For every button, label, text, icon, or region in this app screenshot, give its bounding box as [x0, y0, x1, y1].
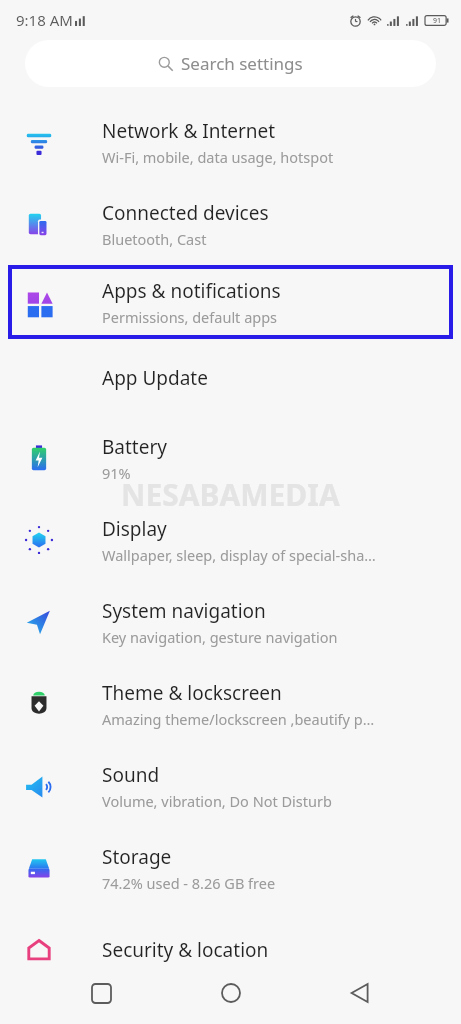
staticText: Key navigation, gesture navigation: [102, 627, 338, 647]
button[interactable]: App Update: [0, 339, 461, 417]
staticText: Storage: [102, 844, 172, 870]
button[interactable]: Security & location: [0, 909, 461, 991]
button[interactable]: System navigation: [0, 581, 461, 663]
staticText: Security & location: [102, 937, 269, 963]
staticText: Volume, vibration, Do Not Disturb: [102, 791, 332, 811]
button[interactable]: Network & Internet: [0, 101, 461, 183]
staticText: 91%: [102, 463, 131, 483]
button[interactable]: Storage: [0, 827, 461, 909]
staticText: Theme & lockscreen: [102, 680, 282, 706]
staticText: Sound: [102, 762, 160, 788]
staticText: Apps & notifications: [102, 278, 281, 304]
staticText: Search settings: [181, 52, 303, 75]
button[interactable]: Home: [202, 964, 260, 1022]
staticText: System navigation: [102, 598, 266, 624]
staticText: Battery: [102, 434, 167, 460]
staticText: Bluetooth, Cast: [102, 229, 207, 249]
button[interactable]: Sound: [0, 745, 461, 827]
button[interactable]: Search settings: [25, 40, 436, 87]
button[interactable]: Apps & notifications: [8, 265, 453, 339]
button[interactable]: Connected devices: [0, 183, 461, 265]
button[interactable]: Recents: [72, 964, 130, 1022]
button[interactable]: Battery: [0, 417, 461, 499]
staticText: Display: [102, 516, 167, 542]
staticText: Amazing theme/lockscreen ,beautify p…: [102, 709, 375, 729]
staticText: 9:18 AM: [16, 10, 73, 30]
staticText: Permissions, default apps: [102, 307, 278, 327]
staticText: 91: [433, 16, 442, 26]
button[interactable]: Theme & lockscreen: [0, 663, 461, 745]
staticText: Connected devices: [102, 200, 269, 226]
staticText: Wi-Fi, mobile, data usage, hotspot: [102, 147, 334, 167]
button[interactable]: Back: [331, 964, 389, 1022]
staticText: Wallpaper, sleep, display of special-sha…: [102, 545, 376, 565]
staticText: 74.2% used - 8.26 GB free: [102, 873, 276, 893]
staticText: Network & Internet: [102, 118, 276, 144]
staticText: App Update: [102, 365, 208, 391]
button[interactable]: Display: [0, 499, 461, 581]
staticText: NESABAMEDIA: [121, 474, 340, 515]
